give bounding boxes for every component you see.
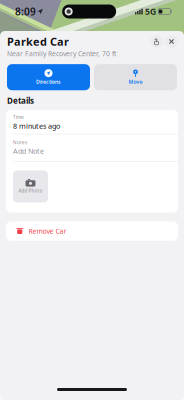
staticText: 8:09 xyxy=(15,5,36,18)
staticText: Near Family Recovery Center, 70 ft xyxy=(7,49,116,58)
staticText: Parked Car xyxy=(7,34,69,49)
staticText: Notes xyxy=(13,139,27,146)
staticText: Directions xyxy=(36,78,61,85)
staticText: Add Note xyxy=(13,146,44,156)
staticText: Details xyxy=(7,95,34,106)
button[interactable]: Add Photo xyxy=(13,170,48,202)
button[interactable]: Share xyxy=(150,35,163,48)
staticText: Time xyxy=(13,114,24,120)
staticText: Move xyxy=(128,78,142,85)
button[interactable]: Close xyxy=(165,35,178,48)
button[interactable]: Move xyxy=(94,64,177,90)
staticText: 5G xyxy=(145,6,156,17)
staticText: Add Photo xyxy=(18,188,42,194)
button[interactable]: Remove Car xyxy=(6,221,178,241)
staticText: 8 minutes ago xyxy=(13,121,60,131)
button[interactable]: Directions xyxy=(7,64,90,90)
button[interactable]: Notes xyxy=(6,134,178,161)
staticText: Remove Car xyxy=(28,226,66,236)
